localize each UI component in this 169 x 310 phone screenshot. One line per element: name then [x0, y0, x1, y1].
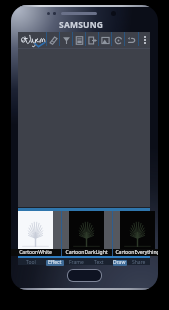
button[interactable]: Undo — [125, 32, 137, 48]
button[interactable]: Draw — [111, 258, 128, 267]
button[interactable]: Home — [68, 270, 101, 281]
button[interactable]: Text — [87, 258, 111, 267]
button[interactable]: CartoonWhite — [11, 211, 61, 256]
staticText: Text — [94, 259, 104, 266]
button[interactable]: Rotate — [112, 32, 124, 48]
staticText: Share — [132, 259, 146, 266]
button[interactable]: Tool — [18, 258, 44, 267]
button[interactable]: CartoonEverything — [112, 211, 158, 256]
staticText: CartoonWhite — [19, 249, 52, 256]
button[interactable]: Share — [128, 258, 150, 267]
staticText: Frame — [69, 259, 84, 266]
staticText: Tool — [26, 259, 36, 266]
staticText: Effect — [48, 259, 62, 266]
button[interactable]: Frame — [65, 258, 87, 267]
button[interactable]: Brush — [60, 32, 72, 48]
button[interactable]: Eraser — [47, 32, 59, 48]
button[interactable]: StyleMe — [18, 32, 46, 48]
staticText: CartoonEverything — [115, 249, 158, 256]
button[interactable]: Crop — [99, 32, 111, 48]
staticText: SAMSUNG — [59, 19, 104, 31]
button[interactable]: Layers — [73, 32, 85, 48]
button[interactable]: Export — [86, 32, 98, 48]
button[interactable]: More options — [139, 32, 150, 48]
staticText: Draw — [113, 259, 126, 266]
staticText: CartoonDarkLight — [65, 249, 108, 256]
button[interactable]: Effect — [44, 258, 65, 267]
button[interactable]: CartoonDarkLight — [61, 211, 112, 256]
